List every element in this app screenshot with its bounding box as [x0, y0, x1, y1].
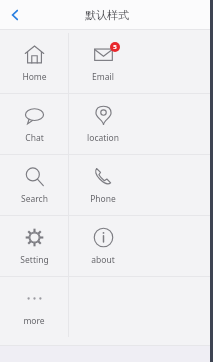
staticText: location: [87, 132, 119, 144]
staticText: about: [91, 254, 115, 266]
staticText: Home: [22, 71, 47, 83]
button[interactable]: Home: [0, 33, 68, 93]
button[interactable]: more: [0, 277, 68, 337]
button[interactable]: Phone: [69, 155, 137, 215]
staticText: Email: [92, 71, 114, 83]
staticText: Phone: [90, 193, 116, 205]
button[interactable]: Back: [0, 0, 30, 29]
staticText: more: [23, 315, 45, 327]
button[interactable]: Chat: [0, 94, 68, 154]
button[interactable]: about: [69, 216, 137, 276]
button[interactable]: Setting: [0, 216, 68, 276]
staticText: Chat: [25, 132, 44, 144]
staticText: 5: [113, 43, 117, 51]
staticText: Setting: [20, 254, 49, 266]
staticText: Search: [21, 193, 48, 205]
button[interactable]: Search: [0, 155, 68, 215]
button[interactable]: location: [69, 94, 137, 154]
staticText: 默认样式: [85, 8, 129, 22]
button[interactable]: 5: [69, 33, 137, 93]
